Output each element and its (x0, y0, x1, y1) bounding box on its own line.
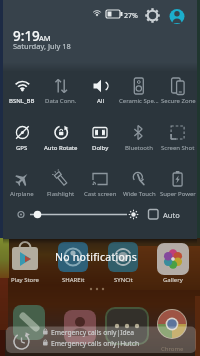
button[interactable] (144, 6, 162, 24)
button[interactable] (119, 157, 158, 203)
staticText: Airplane (10, 190, 34, 198)
staticText: Auto (163, 210, 180, 220)
staticText: BSNL_BB (9, 97, 35, 105)
staticText: Flashlight (47, 190, 75, 198)
staticText: GPS (16, 144, 28, 152)
staticText: Ceramic Spe... (119, 97, 159, 105)
button[interactable] (81, 110, 120, 156)
button[interactable] (81, 63, 120, 109)
button[interactable] (81, 157, 120, 203)
staticText: 9:19 (13, 27, 40, 45)
button[interactable] (119, 110, 158, 156)
staticText: Chrome (161, 345, 184, 353)
staticText: Secure Zone (161, 97, 196, 105)
staticText: Play Store (11, 276, 39, 284)
staticText: AM (39, 33, 51, 43)
button[interactable] (158, 157, 197, 203)
button[interactable] (156, 307, 186, 337)
staticText: Auto Rotate (44, 144, 78, 152)
button[interactable] (58, 242, 88, 282)
staticText: Cast screen (84, 190, 117, 198)
staticText: No notifications (55, 250, 138, 264)
button[interactable] (168, 8, 186, 26)
button[interactable] (158, 242, 188, 282)
button[interactable] (42, 110, 81, 156)
staticText: SHAREit (62, 276, 85, 284)
button[interactable] (42, 157, 81, 203)
staticText: SYNCit (114, 276, 133, 284)
button[interactable] (146, 205, 186, 225)
staticText: 27% (124, 11, 138, 21)
staticText: Gallery (163, 276, 183, 284)
staticText: Screen Shot (161, 144, 195, 152)
staticText: Saturday, July 18 (13, 41, 71, 51)
button[interactable] (56, 298, 88, 330)
button[interactable] (3, 63, 42, 109)
button[interactable] (10, 242, 40, 282)
staticText: Emergency calls only|Idea (51, 328, 135, 337)
button[interactable] (158, 110, 197, 156)
staticText: Bluetooth (125, 144, 153, 152)
button[interactable] (42, 63, 81, 109)
staticText: Data Conn. (45, 97, 77, 105)
staticText: Wide Touch (123, 190, 156, 198)
button[interactable] (7, 322, 195, 353)
button[interactable] (3, 110, 42, 156)
button[interactable] (158, 63, 197, 109)
staticText: Dolby (92, 144, 109, 152)
button[interactable] (14, 298, 46, 330)
staticText: All (97, 97, 104, 105)
button[interactable] (10, 205, 145, 225)
button[interactable] (108, 242, 138, 282)
staticText: Emergency calls only|Hutch (51, 339, 140, 348)
staticText: Super Power (160, 190, 196, 198)
button[interactable] (119, 63, 158, 109)
button[interactable] (3, 157, 42, 203)
button[interactable] (108, 300, 152, 334)
